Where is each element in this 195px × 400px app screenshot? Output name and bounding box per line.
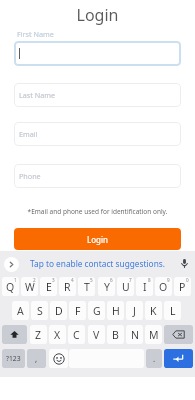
- button[interactable]: Z: [30, 325, 47, 344]
- button[interactable]: R: [59, 277, 76, 296]
- staticText: 2: [33, 277, 36, 283]
- staticText: F: [75, 304, 81, 318]
- staticText: Z: [35, 328, 42, 342]
- staticText: V: [93, 328, 100, 342]
- button[interactable]: I: [136, 277, 153, 296]
- staticText: Email: [19, 129, 38, 139]
- staticText: M: [149, 328, 159, 342]
- staticText: .: [153, 353, 156, 364]
- staticText: L: [170, 304, 176, 318]
- staticText: 7: [129, 277, 132, 283]
- staticText: W: [25, 280, 35, 294]
- staticText: First Name: [17, 29, 54, 39]
- button[interactable]: P: [174, 277, 191, 296]
- staticText: 5: [90, 277, 93, 283]
- staticText: ,: [35, 353, 38, 364]
- staticText: R: [64, 280, 71, 294]
- button[interactable]: U: [117, 277, 134, 296]
- staticText: P: [179, 280, 186, 294]
- staticText: Login: [87, 234, 108, 245]
- button[interactable]: T: [78, 277, 95, 296]
- button[interactable]: Voice input: [178, 257, 191, 270]
- button[interactable]: S: [31, 301, 48, 320]
- button[interactable]: ,: [27, 349, 46, 368]
- button[interactable]: Emoji: [49, 349, 68, 368]
- button[interactable]: Y: [98, 277, 115, 296]
- staticText: Tap to enable contact suggestions.: [0, 258, 195, 269]
- staticText: 4: [71, 277, 74, 283]
- staticText: A: [17, 304, 24, 318]
- staticText: D: [55, 304, 63, 318]
- button[interactable]: Last Name: [14, 83, 181, 107]
- staticText: G: [93, 304, 101, 318]
- button[interactable]: H: [107, 301, 124, 320]
- staticText: K: [150, 304, 157, 318]
- button[interactable]: M: [145, 325, 162, 344]
- button[interactable]: J: [126, 301, 143, 320]
- button[interactable]: Backspace: [164, 325, 193, 344]
- staticText: 1: [14, 277, 17, 283]
- button[interactable]: Login: [14, 228, 181, 250]
- button[interactable]: X: [49, 325, 66, 344]
- button[interactable]: [14, 41, 181, 66]
- button[interactable]: L: [164, 301, 181, 320]
- button[interactable]: G: [88, 301, 105, 320]
- button[interactable]: Q: [2, 277, 19, 296]
- staticText: S: [37, 304, 43, 318]
- staticText: H: [112, 304, 120, 318]
- staticText: Phone: [19, 171, 41, 181]
- button[interactable]: K: [145, 301, 162, 320]
- button[interactable]: N: [126, 325, 143, 344]
- button[interactable]: ?123: [2, 349, 25, 368]
- staticText: Last Name: [19, 90, 55, 100]
- button[interactable]: Enter: [164, 349, 193, 368]
- staticText: E: [46, 280, 52, 294]
- button[interactable]: Expand suggestions: [4, 257, 19, 272]
- button[interactable]: Email: [14, 122, 181, 146]
- staticText: X: [54, 328, 61, 342]
- button[interactable]: A: [12, 301, 29, 320]
- staticText: T: [84, 280, 90, 294]
- staticText: 0: [186, 277, 189, 283]
- staticText: *Email and phone used for identification…: [0, 207, 195, 216]
- staticText: N: [131, 328, 139, 342]
- staticText: ?123: [6, 354, 21, 363]
- staticText: I: [143, 280, 147, 294]
- button[interactable]: Shift: [2, 325, 27, 344]
- staticText: C: [73, 328, 80, 342]
- button[interactable]: C: [68, 325, 85, 344]
- button[interactable]: .: [146, 349, 162, 368]
- staticText: Q: [6, 280, 15, 294]
- staticText: J: [133, 304, 136, 318]
- staticText: O: [159, 280, 168, 294]
- button[interactable]: O: [155, 277, 172, 296]
- staticText: Y: [104, 280, 110, 294]
- button[interactable]: V: [88, 325, 105, 344]
- staticText: U: [122, 280, 130, 294]
- button[interactable]: F: [69, 301, 86, 320]
- button[interactable]: B: [107, 325, 124, 344]
- button[interactable]: D: [50, 301, 67, 320]
- staticText: B: [112, 328, 119, 342]
- staticText: 6: [110, 277, 113, 283]
- staticText: Login: [0, 4, 195, 26]
- staticText: 3: [52, 277, 55, 283]
- button[interactable]: Phone: [14, 164, 181, 188]
- staticText: 8: [148, 277, 151, 283]
- staticText: 9: [167, 277, 170, 283]
- button[interactable]: W: [21, 277, 38, 296]
- button[interactable]: E: [40, 277, 57, 296]
